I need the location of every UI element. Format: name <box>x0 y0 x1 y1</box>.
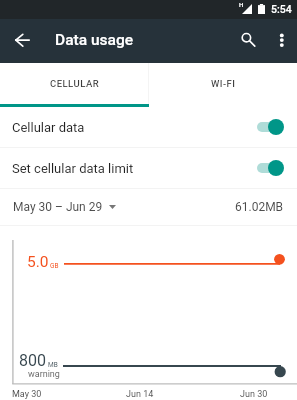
staticText: WI-FI <box>211 78 236 89</box>
button[interactable]: May 30 – Jun 29 <box>13 200 116 214</box>
staticText: Data usage <box>55 31 134 49</box>
button[interactable]: Back <box>1 19 43 63</box>
button[interactable]: More options <box>266 19 297 63</box>
button[interactable]: CELLULAR <box>0 63 148 107</box>
staticText: 5.0 <box>27 253 49 271</box>
staticText: 5:54 <box>271 3 292 15</box>
staticText: CELLULAR <box>50 78 100 89</box>
staticText: H <box>239 1 244 8</box>
staticText: 61.02MB <box>235 200 284 214</box>
staticText: Cellular data <box>12 120 85 135</box>
button[interactable]: Set cellular data limit <box>0 148 297 188</box>
staticText: Jun 30 <box>240 389 268 400</box>
staticText: May 30 <box>12 389 42 400</box>
staticText: warning <box>28 369 60 380</box>
button[interactable]: WI-FI <box>149 63 297 107</box>
staticText: GB <box>50 262 59 270</box>
staticText: MB <box>48 361 58 369</box>
staticText: May 30 – Jun 29 <box>13 200 103 214</box>
button[interactable]: Cellular data <box>0 107 297 147</box>
button[interactable]: Search <box>226 19 270 63</box>
staticText: 800 <box>19 351 46 370</box>
staticText: Set cellular data limit <box>12 161 134 176</box>
staticText: Jun 14 <box>126 389 154 400</box>
